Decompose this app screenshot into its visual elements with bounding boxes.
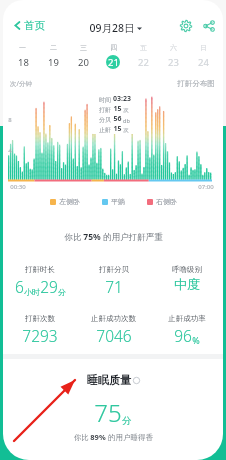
staticText: 7046 — [96, 325, 132, 346]
staticText: 75 — [94, 396, 122, 429]
staticText: 的用户打鼾严重 — [101, 231, 163, 243]
staticText: 打鼾次数 — [25, 314, 55, 323]
staticText: 右侧卧 — [156, 197, 177, 206]
staticText: 19 — [48, 56, 59, 69]
staticText: 的用户睡得香 — [106, 432, 153, 442]
button[interactable]: 止鼾成功率 — [150, 314, 223, 346]
staticText: 六 — [170, 43, 177, 52]
staticText: 平躺 — [111, 197, 125, 206]
staticText: 次 — [123, 107, 129, 114]
staticText: 止鼾 — [99, 126, 111, 134]
button[interactable]: 首页 — [9, 17, 48, 34]
staticText: 4 — [8, 147, 12, 155]
button[interactable]: 二 — [38, 42, 68, 76]
staticText: 打鼾分贝 — [99, 265, 129, 274]
button[interactable]: 六 — [158, 42, 188, 76]
staticText: 21 — [108, 56, 119, 69]
staticText: 二 — [50, 43, 57, 52]
button[interactable]: 打鼾次数 — [3, 314, 77, 346]
staticText: 次 — [123, 127, 129, 134]
staticText: 分贝 — [99, 116, 111, 124]
staticText: 左侧卧 — [59, 197, 80, 206]
staticText: 分 — [122, 415, 132, 427]
button[interactable]: 三 — [68, 42, 98, 76]
staticText: 03:23 — [113, 94, 131, 104]
staticText: 分 — [58, 287, 66, 297]
staticText: % — [192, 334, 200, 346]
staticText: 呼噜级别 — [172, 265, 202, 274]
staticText: 止鼾成功率 — [168, 314, 206, 323]
staticText: 07:00 — [198, 183, 214, 191]
staticText: 你比 — [73, 432, 90, 442]
staticText: 29 — [40, 276, 58, 297]
button[interactable]: 09月28日 — [85, 19, 146, 37]
staticText: 89% — [90, 432, 106, 442]
button[interactable]: 打鼾分贝 — [77, 265, 150, 297]
staticText: 首页 — [24, 19, 45, 32]
staticText: 一 — [19, 43, 26, 52]
staticText: 22 — [138, 56, 149, 69]
staticText: 时间 — [99, 96, 111, 104]
button[interactable]: 呼噜级别 — [150, 265, 223, 292]
button[interactable]: 睡眠质量 — [87, 373, 140, 387]
staticText: 四 — [110, 43, 117, 52]
staticText: 三 — [80, 43, 87, 52]
staticText: 15 — [113, 124, 122, 134]
button[interactable]: Settings — [175, 15, 197, 37]
staticText: 睡眠质量 — [87, 373, 131, 387]
staticText: 71 — [105, 276, 123, 297]
staticText: 15 — [113, 104, 122, 114]
button[interactable]: 日 — [188, 42, 218, 76]
staticText: 75% — [83, 231, 101, 243]
staticText: 中度 — [174, 276, 200, 292]
button[interactable]: 止鼾成功次数 — [77, 314, 150, 346]
staticText: 18 — [18, 56, 29, 69]
staticText: 09月28日 — [89, 21, 135, 35]
staticText: 8 — [8, 116, 12, 124]
staticText: db — [123, 117, 130, 124]
button[interactable]: 一 — [7, 42, 38, 76]
staticText: 96 — [174, 325, 192, 346]
button[interactable]: 四 — [98, 42, 128, 76]
staticText: 打鼾分布图 — [177, 79, 215, 88]
button[interactable]: 五 — [128, 42, 158, 76]
staticText: 7293 — [22, 325, 58, 346]
staticText: 五 — [140, 43, 147, 52]
staticText: 00:30 — [10, 183, 26, 191]
staticText: 次/分钟 — [10, 79, 32, 88]
staticText: 6 — [15, 276, 24, 297]
staticText: 你比 — [63, 231, 83, 243]
staticText: 56 — [113, 114, 122, 124]
staticText: 20 — [78, 56, 89, 69]
staticText: 小时 — [24, 287, 40, 297]
staticText: 日 — [200, 43, 207, 52]
staticText: 打鼾 — [99, 106, 111, 114]
staticText: 止鼾成功次数 — [91, 314, 136, 323]
staticText: 23 — [168, 56, 179, 69]
staticText: 24 — [198, 56, 209, 69]
button[interactable]: Share — [198, 15, 220, 37]
staticText: 打鼾时长 — [25, 265, 55, 274]
button[interactable]: 打鼾时长 — [3, 265, 77, 297]
